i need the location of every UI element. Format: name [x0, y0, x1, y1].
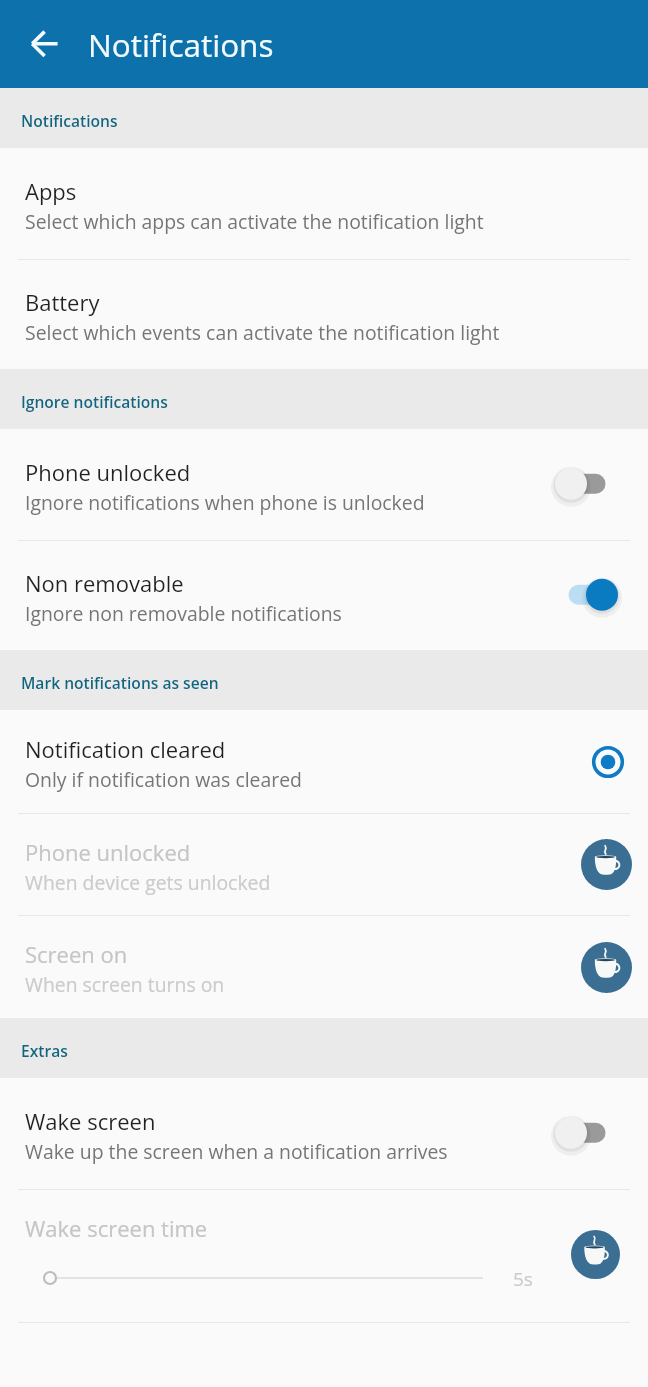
staticText: When device gets unlocked: [25, 869, 271, 895]
staticText: Notifications: [88, 23, 274, 66]
staticText: Only if notification was cleared: [25, 766, 302, 792]
button[interactable]: Screen on: [0, 916, 648, 1018]
staticText: Extras: [21, 1040, 68, 1061]
staticText: Apps: [25, 176, 77, 206]
button[interactable]: Premium feature: [571, 1230, 620, 1279]
staticText: Battery: [25, 287, 100, 317]
button[interactable]: Apps: [0, 148, 648, 259]
button[interactable]: Switch off: [555, 461, 618, 509]
staticText: Phone unlocked: [25, 837, 191, 867]
button[interactable]: Switch on: [555, 572, 618, 620]
staticText: When screen turns on: [25, 971, 225, 997]
staticText: Select which events can activate the not…: [25, 319, 500, 345]
staticText: Wake up the screen when a notification a…: [25, 1138, 448, 1164]
staticText: Ignore notifications: [21, 391, 168, 412]
button[interactable]: Switch off: [555, 1110, 618, 1158]
staticText: Mark notifications as seen: [21, 672, 219, 693]
staticText: 5s: [513, 1266, 533, 1292]
button[interactable]: Notification cleared: [0, 710, 648, 813]
button[interactable]: Non removable: [0, 541, 648, 650]
staticText: Phone unlocked: [25, 457, 191, 487]
staticText: Screen on: [25, 939, 128, 969]
staticText: Wake screen: [25, 1106, 156, 1136]
button[interactable]: Back: [9, 9, 79, 79]
staticText: Ignore notifications when phone is unloc…: [25, 489, 425, 515]
staticText: Select which apps can activate the notif…: [25, 208, 484, 234]
staticText: Ignore non removable notifications: [25, 600, 342, 626]
button[interactable]: Selected: [584, 738, 632, 786]
staticText: Non removable: [25, 568, 184, 598]
button[interactable]: Wake screen: [0, 1078, 648, 1189]
button[interactable]: Battery: [0, 260, 648, 369]
button[interactable]: Phone unlocked: [0, 429, 648, 540]
button[interactable]: Wake screen time slider: [30, 1263, 550, 1293]
staticText: Notifications: [21, 110, 118, 131]
button[interactable]: Premium feature: [581, 839, 632, 890]
staticText: Wake screen time: [25, 1213, 208, 1243]
button[interactable]: Premium feature: [581, 942, 632, 993]
button[interactable]: Phone unlocked: [0, 814, 648, 915]
staticText: Notification cleared: [25, 734, 226, 764]
